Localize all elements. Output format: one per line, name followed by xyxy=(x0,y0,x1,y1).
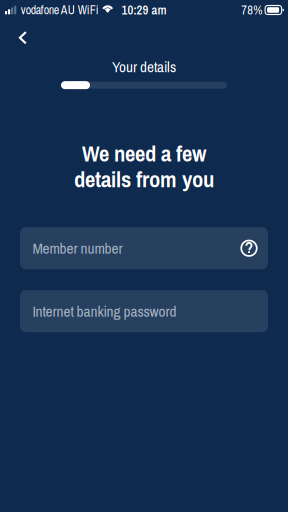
staticText: Member number xyxy=(32,238,122,259)
staticText: We need a few xyxy=(82,138,206,169)
staticText: 10:29 am xyxy=(121,1,166,19)
button[interactable]: Back xyxy=(0,17,39,54)
staticText: vodafone AU WiFi xyxy=(21,2,99,18)
staticText: Internet banking password xyxy=(32,301,176,322)
staticText: 78% xyxy=(241,1,262,19)
staticText: Your details xyxy=(112,56,176,77)
button[interactable]: Help with member number xyxy=(240,240,257,257)
staticText: details from you xyxy=(74,164,214,194)
